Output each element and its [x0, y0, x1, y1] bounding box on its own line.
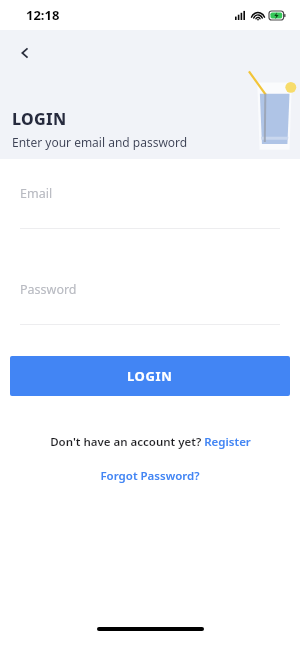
staticText: Don't have an account yet? Register: [50, 434, 251, 450]
staticText: LOGIN: [12, 108, 67, 130]
button[interactable]: Forgot Password?: [0, 466, 300, 486]
staticText: Email: [20, 185, 53, 202]
staticText: Enter your email and password: [12, 134, 188, 150]
button[interactable]: Email: [0, 175, 300, 211]
staticText: LOGIN: [127, 367, 173, 385]
button[interactable]: LOGIN: [10, 356, 290, 396]
staticText: 12:18: [26, 6, 60, 24]
staticText: Password: [20, 281, 77, 298]
button[interactable]: Back: [8, 36, 42, 70]
button[interactable]: Don't have an account yet? Register: [0, 432, 300, 452]
staticText: Forgot Password?: [100, 468, 200, 484]
button[interactable]: Password: [0, 271, 300, 307]
